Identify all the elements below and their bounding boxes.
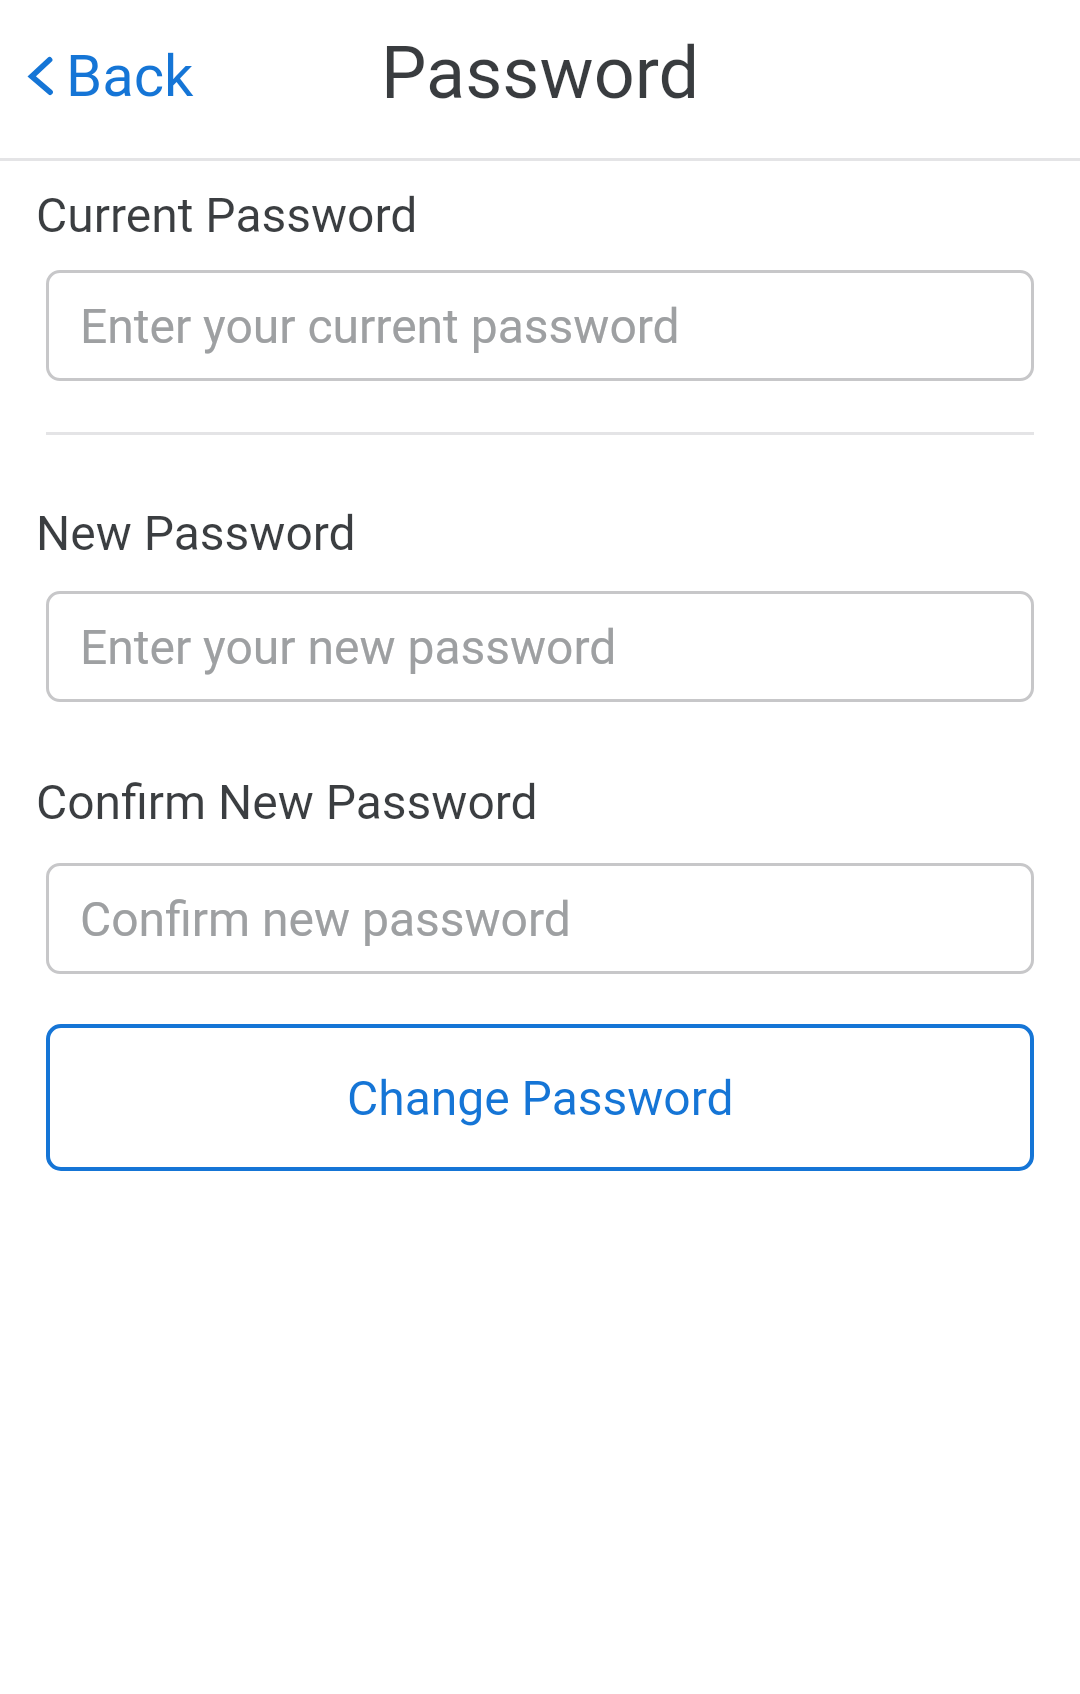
button[interactable]: Confirm new password <box>46 863 1034 974</box>
staticText: Enter your current password <box>80 298 680 354</box>
staticText: Current Password <box>36 187 418 243</box>
button[interactable]: Back <box>29 38 194 110</box>
staticText: Password <box>381 31 700 115</box>
button[interactable]: Enter your current password <box>46 270 1034 381</box>
button[interactable]: Change Password <box>46 1024 1034 1171</box>
staticText: Back <box>66 42 194 110</box>
staticText: Change Password <box>347 1070 734 1126</box>
button[interactable]: Enter your new password <box>46 591 1034 702</box>
staticText: Confirm New Password <box>36 774 538 830</box>
staticText: New Password <box>36 505 356 561</box>
staticText: Enter your new password <box>80 619 617 675</box>
staticText: Confirm new password <box>80 891 571 947</box>
